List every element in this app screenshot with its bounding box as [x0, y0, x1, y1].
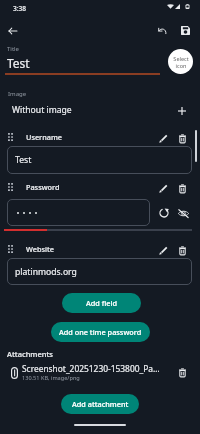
- button[interactable]: Delete Website: [173, 241, 191, 259]
- staticText: Add one time password: [59, 327, 142, 337]
- staticText: Screenshot_20251230-153800_Pa…: [22, 363, 172, 374]
- staticText: Website: [26, 244, 54, 254]
- button[interactable]: Delete Username: [173, 129, 191, 147]
- button[interactable]: Undo: [151, 19, 173, 41]
- button[interactable]: Delete attachment: [173, 363, 191, 381]
- button[interactable]: Regenerate password: [155, 204, 173, 222]
- button[interactable]: Add field: [62, 293, 141, 313]
- staticText: 3:38: [13, 4, 27, 13]
- button[interactable]: Add attachment: [61, 394, 139, 414]
- staticText: Select icon: [173, 55, 189, 69]
- button[interactable]: Select icon: [168, 49, 193, 74]
- button[interactable]: [7, 199, 150, 226]
- button[interactable]: Edit Website: [154, 241, 172, 259]
- staticText: Username: [26, 132, 63, 142]
- staticText: Test: [7, 55, 30, 71]
- staticText: Add attachment: [72, 399, 129, 409]
- staticText: Without image: [12, 104, 72, 116]
- button[interactable]: platinmods.org: [7, 258, 192, 285]
- staticText: Add field: [86, 298, 117, 308]
- button[interactable]: Delete Password: [173, 179, 191, 197]
- button[interactable]: Add image: [173, 102, 191, 120]
- button[interactable]: Show password: [174, 204, 192, 222]
- staticText: Password: [26, 182, 60, 192]
- button[interactable]: Save: [174, 19, 196, 41]
- button[interactable]: Edit Username: [154, 129, 172, 147]
- staticText: Image: [8, 90, 27, 98]
- button[interactable]: Edit Password: [154, 179, 172, 197]
- staticText: Attachments: [7, 349, 53, 359]
- staticText: 130.51 KB, image/png: [22, 374, 80, 382]
- button[interactable]: Add one time password: [51, 322, 150, 342]
- staticText: Title: [7, 45, 19, 53]
- button[interactable]: Back: [2, 20, 23, 41]
- staticText: platinmods.org: [15, 266, 77, 278]
- staticText: Test: [15, 154, 32, 166]
- button[interactable]: Test: [7, 146, 192, 174]
